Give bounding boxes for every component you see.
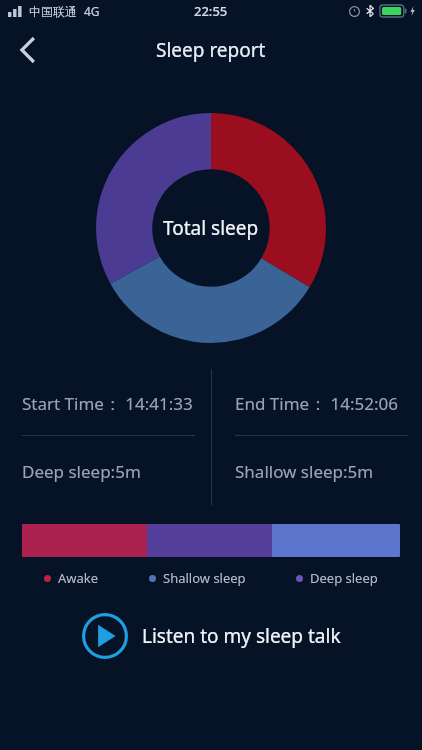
staticText: Start Time： 14:41:33 bbox=[22, 392, 193, 415]
staticText: 4G bbox=[84, 3, 100, 19]
staticText: Deep sleep bbox=[310, 569, 378, 587]
staticText: Shallow sleep bbox=[163, 569, 246, 587]
staticText: 中国联通 bbox=[29, 4, 77, 19]
button[interactable]: Back bbox=[0, 22, 56, 78]
staticText: Listen to my sleep talk bbox=[142, 623, 341, 649]
staticText: Awake bbox=[58, 569, 99, 587]
staticText: 22:55 bbox=[194, 2, 228, 20]
button[interactable]: Listen to my sleep talk bbox=[70, 607, 353, 665]
staticText: Shallow sleep:5m bbox=[235, 460, 374, 483]
staticText: Sleep report bbox=[156, 37, 266, 63]
staticText: Total sleep bbox=[163, 215, 259, 241]
staticText: Deep sleep:5m bbox=[22, 460, 141, 483]
staticText: End Time： 14:52:06 bbox=[235, 392, 399, 415]
